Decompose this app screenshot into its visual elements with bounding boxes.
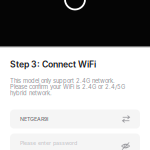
button[interactable]: Switch network: [10, 109, 140, 128]
staticText: hybrid network.: [10, 89, 52, 96]
staticText: Please confirm your WiFi is 2.4G or 2.4/…: [10, 83, 125, 90]
staticText: Step 3: Connect WiFi: [10, 59, 96, 69]
staticText: NETGEAR9I: [20, 116, 48, 122]
staticText: This model only support 2.4G network.: [10, 77, 115, 84]
button[interactable]: Show password: [10, 133, 140, 150]
staticText: Please enter password: [20, 140, 77, 146]
